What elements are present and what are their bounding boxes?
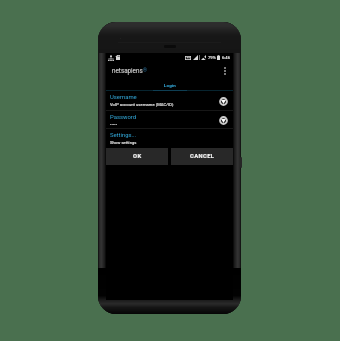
button[interactable]: Expand — [217, 95, 229, 107]
staticText: netsapiens — [112, 67, 143, 74]
staticText: Login — [164, 83, 176, 88]
button[interactable]: Username — [106, 91, 233, 110]
staticText: Show settings — [110, 140, 137, 145]
staticText: Password — [110, 114, 137, 121]
button[interactable]: CANCEL — [171, 148, 233, 165]
button[interactable]: Login — [106, 79, 233, 92]
button[interactable]: OK — [106, 148, 168, 165]
button[interactable]: Password — [106, 111, 233, 129]
button[interactable]: More options — [220, 63, 230, 78]
button[interactable]: Settings... — [106, 129, 233, 147]
staticText: Username — [110, 94, 137, 101]
staticText: 79% — [208, 55, 216, 60]
staticText: CANCEL — [190, 153, 215, 160]
staticText: Settings... — [110, 132, 137, 139]
staticText: VoIP account username (MAC/ID) — [110, 102, 174, 107]
staticText: ® — [143, 67, 147, 73]
staticText: OK — [133, 153, 142, 160]
button[interactable]: Expand — [217, 114, 229, 126]
staticText: ••••• — [110, 122, 118, 127]
staticText: 6:46 — [222, 55, 231, 60]
